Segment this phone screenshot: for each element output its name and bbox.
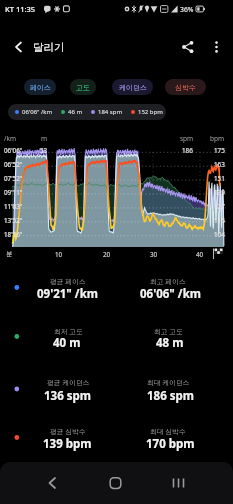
staticText: 06'06" xyxy=(4,146,23,155)
staticText: spm xyxy=(180,134,194,143)
staticText: 115 xyxy=(214,216,225,225)
staticText: 페이스 xyxy=(30,83,51,92)
staticText: 분 xyxy=(6,250,13,258)
staticText: 186 spm xyxy=(147,388,194,404)
staticText: 139 bpm xyxy=(43,436,92,452)
staticText: 186 xyxy=(182,146,193,155)
staticText: 09'21" /km xyxy=(37,286,98,302)
staticText: 09'11" xyxy=(4,188,23,197)
staticText: 케이던스 xyxy=(119,83,147,92)
staticText: 30 xyxy=(150,250,158,259)
button[interactable] xyxy=(162,468,194,498)
staticText: 심박수 xyxy=(175,83,196,92)
staticText: 평균 케이던스 xyxy=(47,378,90,387)
button[interactable] xyxy=(8,38,26,56)
staticText: 151 xyxy=(214,174,225,183)
button[interactable] xyxy=(178,38,198,56)
staticText: 10 xyxy=(55,250,63,259)
staticText: 152 bpm xyxy=(138,108,163,116)
staticText: 136 spm xyxy=(44,388,91,404)
staticText: 평균 심박수 xyxy=(50,427,86,436)
staticText: 170 bpm xyxy=(146,436,195,452)
staticText: /km xyxy=(4,134,16,143)
staticText: 최대 심박수 xyxy=(150,427,186,436)
button[interactable] xyxy=(207,38,225,56)
staticText: 46 m xyxy=(68,108,83,116)
staticText: 40 xyxy=(196,250,204,259)
staticText: 163 xyxy=(214,160,225,169)
staticText: 평균 페이스 xyxy=(50,277,86,286)
staticText: 48 m xyxy=(156,335,184,351)
staticText: 11'03" xyxy=(4,202,23,211)
staticText: 06'52" xyxy=(4,160,23,169)
button[interactable]: 심박수 xyxy=(165,79,206,95)
staticText: 36% xyxy=(180,5,194,14)
staticText: 139 xyxy=(214,188,225,197)
button[interactable]: 케이던스 xyxy=(112,79,153,95)
staticText: 07'52" xyxy=(4,174,23,183)
button[interactable] xyxy=(36,468,68,498)
staticText: m xyxy=(41,134,48,143)
staticText: 최저 고도 xyxy=(54,327,83,336)
staticText: 최대 케이던스 xyxy=(147,378,190,387)
staticText: 달리기 xyxy=(33,41,65,54)
button[interactable]: 페이스 xyxy=(24,79,56,95)
staticText: 13'52" xyxy=(4,216,23,225)
staticText: 104 xyxy=(214,230,225,239)
staticText: 40 m xyxy=(53,335,81,351)
staticText: 20 xyxy=(103,250,111,259)
staticText: 06'06" /km xyxy=(22,108,53,116)
staticText: KT 11:35 xyxy=(5,4,36,14)
button[interactable]: 고도 xyxy=(70,79,96,95)
staticText: 고도 xyxy=(76,83,90,92)
staticText: 53 xyxy=(40,146,48,155)
staticText: 175 xyxy=(214,146,225,155)
staticText: bpm xyxy=(210,134,225,143)
button[interactable] xyxy=(99,468,131,498)
staticText: 184 spm xyxy=(98,108,123,116)
staticText: 127 xyxy=(214,202,225,211)
staticText: 06'06" /km xyxy=(140,286,201,302)
staticText: 최고 페이스 xyxy=(150,277,186,286)
staticText: 최고 고도 xyxy=(154,327,183,336)
staticText: 18'56" xyxy=(4,230,23,239)
